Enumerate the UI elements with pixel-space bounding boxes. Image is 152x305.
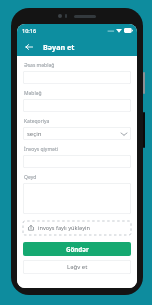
button[interactable]	[23, 155, 131, 168]
staticText: Qeyd	[24, 174, 37, 181]
button[interactable]: seçin	[23, 127, 131, 140]
staticText: seçin	[27, 130, 42, 138]
staticText: Əsas məbləğ	[24, 62, 55, 69]
button[interactable]: Göndər	[23, 242, 131, 256]
button[interactable]	[23, 99, 131, 112]
staticText: Bəyan et	[43, 42, 75, 52]
button[interactable]	[23, 183, 131, 214]
staticText: Ləğv et	[67, 263, 88, 271]
staticText: Məbləğ	[24, 90, 42, 97]
staticText: Kateqoriya	[24, 118, 50, 125]
staticText: 10:16	[22, 27, 37, 34]
button[interactable]: invoys faylı yükləyin	[23, 221, 131, 235]
staticText: Göndər	[66, 245, 89, 253]
staticText: invoys faylı yükləyin	[38, 224, 90, 232]
staticText: İnvoys qiyməti	[24, 146, 59, 153]
button[interactable]: Back	[22, 40, 36, 54]
button[interactable]: Ləğv et	[23, 260, 131, 274]
button[interactable]	[23, 71, 131, 84]
